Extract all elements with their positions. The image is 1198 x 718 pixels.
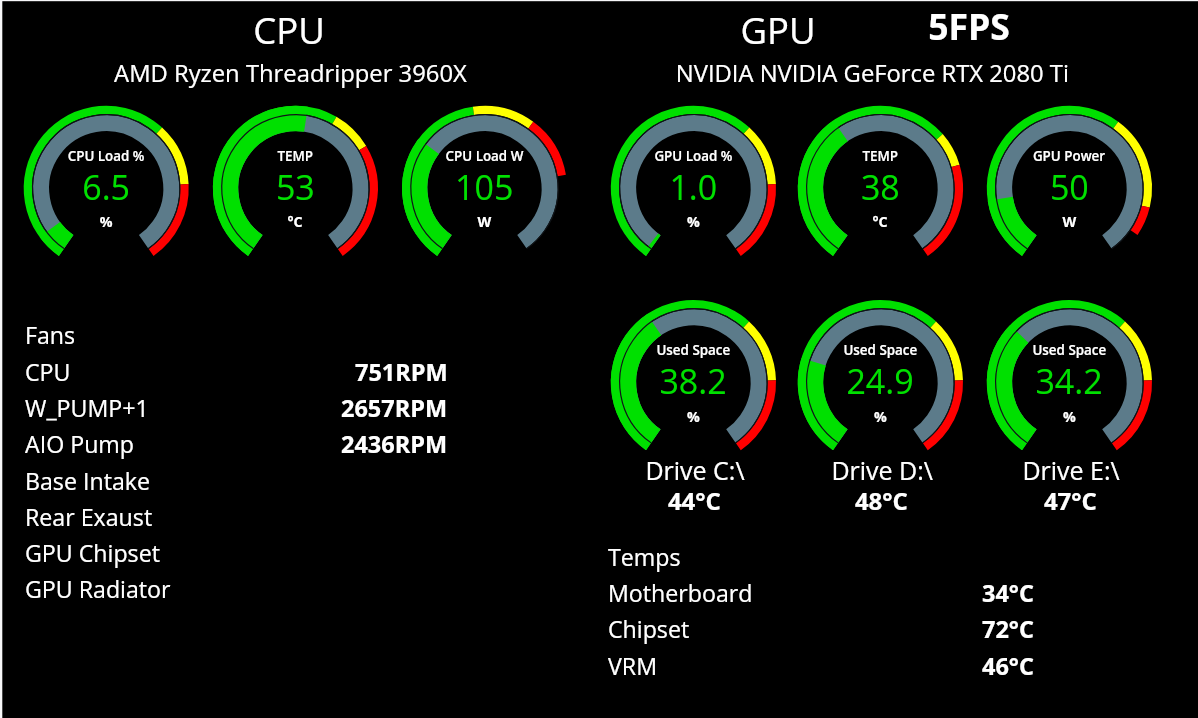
button[interactable]: TEMP 53°C	[213, 106, 378, 271]
button[interactable]: Temps	[605, 541, 1037, 577]
button[interactable]: VRM 46°C	[605, 650, 1037, 686]
button[interactable]: GPU Power 50W	[987, 106, 1152, 271]
button[interactable]: Fans	[22, 320, 452, 356]
button[interactable]: GPU NVIDIA GeForce RTX 2080 Ti	[660, 10, 1090, 90]
button[interactable]: Base Intake	[22, 465, 452, 501]
button[interactable]: CPU AMD Ryzen Threadripper 3960X	[200, 10, 580, 90]
button[interactable]: Used Space 24.9%	[798, 300, 963, 521]
button[interactable]: Used Space 34.2%	[987, 300, 1152, 521]
button[interactable]: W_PUMP+1 2657RPM	[22, 392, 452, 428]
button[interactable]: GPU Chipset	[22, 537, 452, 573]
button[interactable]: Chipset 72°C	[605, 614, 1037, 650]
button[interactable]: Motherboard 34°C	[605, 577, 1037, 613]
button[interactable]: CPU Load % 6.5%	[24, 106, 189, 271]
button[interactable]: CPU Load W 105W	[402, 106, 567, 271]
button[interactable]: TEMP 38°C	[798, 106, 963, 271]
button[interactable]: AIO Pump 2436RPM	[22, 428, 452, 464]
button[interactable]: GPU Load % 1.0%	[611, 106, 776, 271]
button[interactable]: Rear Exaust	[22, 501, 452, 537]
button[interactable]: CPU 751RPM	[22, 356, 452, 392]
button[interactable]: 5 FPS	[925, 12, 1015, 46]
button[interactable]: GPU Radiator	[22, 574, 452, 610]
button[interactable]: Used Space 38.2%	[611, 300, 776, 521]
